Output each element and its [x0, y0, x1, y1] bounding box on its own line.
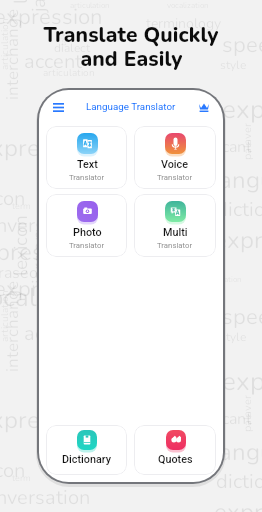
- staticText: Dictionary: [62, 453, 111, 466]
- staticText: Translator: [157, 173, 193, 182]
- staticText: Multi: [163, 226, 188, 239]
- button[interactable]: Multi: [134, 194, 216, 257]
- staticText: Photo: [73, 226, 102, 239]
- staticText: Voice: [161, 158, 189, 171]
- staticText: Text: [77, 158, 98, 171]
- staticText: Quotes: [158, 453, 193, 466]
- button[interactable]: Voice: [134, 126, 216, 189]
- staticText: Translator: [69, 241, 105, 250]
- button[interactable]: Dictionary: [46, 425, 127, 475]
- button[interactable]: Premium: [196, 99, 212, 115]
- button[interactable]: Quotes: [134, 425, 216, 475]
- staticText: Translator: [69, 173, 105, 182]
- staticText: Translator: [157, 241, 193, 250]
- staticText: Language Translator: [86, 101, 176, 112]
- staticText: and Easily: [80, 45, 183, 74]
- button[interactable]: Photo: [46, 194, 127, 257]
- button[interactable]: Text: [46, 126, 127, 189]
- staticText: Translate Quickly: [43, 21, 219, 50]
- button[interactable]: Menu: [50, 99, 66, 115]
